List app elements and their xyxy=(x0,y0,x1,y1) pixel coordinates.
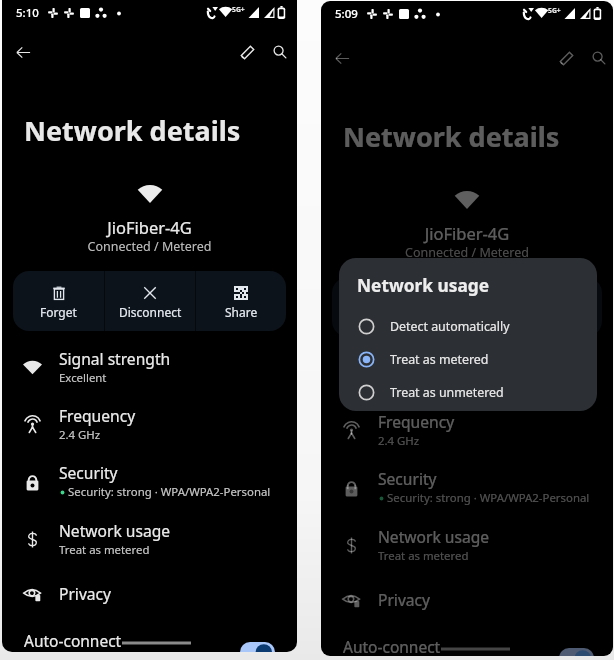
button[interactable]: Privacy xyxy=(2,578,297,608)
staticText: Network details xyxy=(24,112,241,149)
button[interactable]: Search xyxy=(262,34,297,70)
staticText: Auto-connect xyxy=(343,636,441,656)
staticText: 5G+ xyxy=(548,6,561,15)
staticText: Connected / Metered xyxy=(2,238,297,255)
button[interactable]: Disconnect xyxy=(423,277,512,337)
staticText: Disconnect xyxy=(119,304,182,320)
staticText: 2.4 GHz xyxy=(59,427,101,443)
button[interactable]: Edit network xyxy=(229,34,265,70)
button[interactable]: Security xyxy=(2,459,297,503)
button[interactable]: Forget xyxy=(13,271,104,331)
button[interactable]: Treat as metered xyxy=(339,342,597,376)
staticText: Treat as unmetered xyxy=(390,384,504,401)
staticText: 5G+ xyxy=(232,5,245,14)
button[interactable]: Edit network xyxy=(548,40,584,76)
staticText: 2.4 GHz xyxy=(378,433,420,449)
button[interactable]: Security xyxy=(321,465,613,509)
staticText: Network usage xyxy=(59,520,171,541)
staticText: Detect automatically xyxy=(390,318,510,335)
button[interactable]: Network usage xyxy=(2,517,297,561)
staticText: Signal strength xyxy=(59,348,171,369)
button[interactable]: Treat as unmetered xyxy=(339,375,597,409)
staticText: Privacy xyxy=(378,589,431,610)
staticText: 5:09 xyxy=(335,6,358,22)
staticText: Auto-connect xyxy=(24,630,122,651)
staticText: Forget xyxy=(40,304,77,320)
staticText: Security: strong · WPA/WPA2-Personal xyxy=(68,484,271,500)
button[interactable]: Detect automatically xyxy=(339,309,597,343)
staticText: Security xyxy=(59,462,118,483)
button[interactable]: Auto-connect xyxy=(2,625,297,652)
button[interactable]: Frequency xyxy=(2,402,297,446)
staticText: Excellent xyxy=(59,370,107,386)
staticText: Network details xyxy=(343,118,560,155)
staticText: JioFiber-4G xyxy=(321,222,613,244)
button[interactable]: Network usage xyxy=(321,523,613,567)
staticText: Treat as metered xyxy=(390,351,489,368)
button[interactable]: Share xyxy=(513,277,602,337)
button[interactable]: Signal strength xyxy=(321,351,613,395)
button[interactable]: Auto-connect xyxy=(321,631,613,656)
button[interactable]: Disconnect xyxy=(105,271,195,331)
staticText: Forget xyxy=(359,310,396,326)
staticText: Frequency xyxy=(378,411,455,432)
staticText: Security: strong · WPA/WPA2-Personal xyxy=(387,490,590,506)
button[interactable]: Share xyxy=(196,271,286,331)
staticText: Share xyxy=(225,304,258,320)
button[interactable]: Back xyxy=(5,34,41,70)
staticText: Security xyxy=(378,468,437,489)
staticText: Signal strength xyxy=(378,354,490,375)
staticText: Excellent xyxy=(378,376,426,392)
staticText: Connected / Metered xyxy=(321,244,613,261)
button[interactable]: Search xyxy=(581,40,613,76)
staticText: Treat as metered xyxy=(59,542,150,558)
button[interactable]: Back xyxy=(324,40,360,76)
staticText: 5:10 xyxy=(16,5,39,21)
button[interactable]: Frequency xyxy=(321,408,613,452)
button[interactable]: Auto-connect toggle xyxy=(240,642,275,652)
button[interactable]: Forget xyxy=(332,277,422,337)
staticText: Frequency xyxy=(59,405,136,426)
staticText: Network usage xyxy=(378,526,490,547)
button[interactable]: Privacy xyxy=(321,584,613,614)
staticText: Treat as metered xyxy=(378,548,469,564)
staticText: Disconnect xyxy=(436,310,499,326)
staticText: Privacy xyxy=(59,583,112,604)
staticText: JioFiber-4G xyxy=(2,216,297,238)
staticText: Network usage xyxy=(357,274,490,298)
button[interactable]: Signal strength xyxy=(2,345,297,389)
button[interactable]: Auto-connect toggle xyxy=(559,648,594,656)
